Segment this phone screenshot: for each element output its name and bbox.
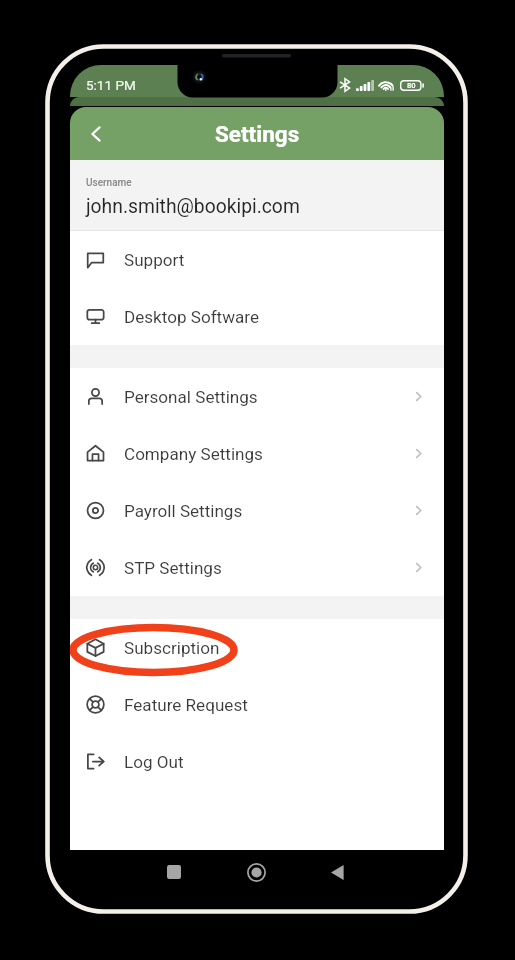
staticText: john.smith@bookipi.com — [86, 195, 300, 218]
button[interactable]: Company Settings — [70, 425, 444, 482]
button[interactable]: Personal Settings — [70, 368, 444, 425]
staticText: Support — [124, 250, 185, 270]
button[interactable]: Support — [70, 231, 444, 288]
button[interactable]: Log Out — [70, 733, 444, 790]
button[interactable]: Back — [74, 112, 118, 156]
button[interactable]: Desktop Software — [70, 288, 444, 345]
button[interactable]: Feature Request — [70, 676, 444, 733]
staticText: Username — [86, 177, 132, 189]
button[interactable]: Home — [234, 850, 278, 894]
staticText: Feature Request — [124, 695, 248, 715]
staticText: Settings — [215, 121, 300, 147]
staticText: Desktop Software — [124, 307, 260, 327]
staticText: Company Settings — [124, 444, 263, 464]
staticText: Payroll Settings — [124, 501, 243, 521]
staticText: 5:11 PM — [86, 77, 136, 93]
button[interactable]: Payroll Settings — [70, 482, 444, 539]
staticText: STP Settings — [124, 558, 222, 578]
staticText: Log Out — [124, 752, 184, 772]
staticText: 80 — [407, 81, 416, 90]
staticText: Personal Settings — [124, 387, 258, 407]
button[interactable]: Recent apps — [152, 850, 196, 894]
button[interactable]: STP Settings — [70, 539, 444, 596]
button[interactable]: Subscription — [70, 619, 444, 676]
button[interactable]: Back — [315, 850, 359, 894]
staticText: Subscription — [124, 638, 220, 658]
